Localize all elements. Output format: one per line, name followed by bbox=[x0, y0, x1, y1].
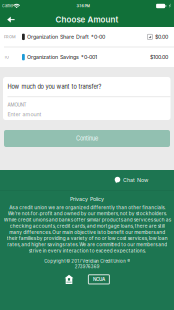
button[interactable]: Privacy Policy bbox=[57, 196, 117, 203]
staticText: Continue bbox=[76, 135, 98, 142]
staticText: $0.00 bbox=[155, 34, 168, 40]
staticText: AMOUNT bbox=[7, 102, 26, 108]
button[interactable]: Back bbox=[0, 12, 22, 27]
button[interactable]: Chat Now bbox=[114, 170, 174, 190]
staticText: Enter amount bbox=[7, 111, 41, 118]
staticText: How much do you want to transfer? bbox=[7, 83, 101, 90]
button[interactable]: FROM bbox=[0, 27, 174, 47]
button[interactable]: TO bbox=[0, 47, 174, 67]
staticText: FROM bbox=[4, 34, 16, 39]
staticText: Copyright © 2017 Veridian Credit Union ®… bbox=[44, 259, 130, 269]
staticText: 3:16 PM bbox=[76, 4, 89, 8]
staticText: Carrier bbox=[2, 4, 13, 8]
staticText: Choose Amount bbox=[55, 15, 118, 24]
staticText: $100.00 bbox=[150, 54, 168, 60]
staticText: Chat Now bbox=[123, 177, 148, 183]
button[interactable]: Continue bbox=[4, 130, 170, 147]
staticText: Organization Savings *0-001 bbox=[27, 54, 97, 60]
staticText: Organization Share Draft *0-00 bbox=[27, 34, 105, 40]
staticText: As a credit union we are organized diffe… bbox=[3, 205, 170, 254]
staticText: TO bbox=[4, 55, 9, 59]
staticText: Privacy Policy bbox=[70, 196, 104, 202]
staticText: NCUA bbox=[93, 277, 105, 282]
